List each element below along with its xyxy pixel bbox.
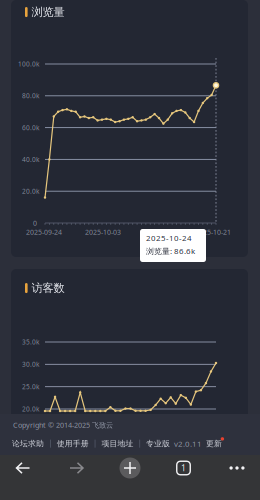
staticText: 60.0k [22,123,39,132]
staticText: 2025-10-24 [146,233,192,243]
staticText: 2025-10-03 [85,227,121,237]
staticText: 30.0k [22,360,39,369]
staticText: 使用手册 [57,439,89,449]
staticText: 论坛求助 [12,439,44,449]
button[interactable]: More [224,455,250,481]
staticText: 0 [33,218,37,228]
staticText: 40.0k [22,155,39,164]
staticText: 100.0k [18,60,39,68]
staticText: 1 [181,462,186,474]
staticText: 20.0k [22,405,39,413]
staticText: 访客数 [32,281,65,295]
staticText: 80.0k [22,91,39,100]
staticText: 2025-09-24 [26,227,62,237]
staticText: v2.0.11 [174,438,202,449]
staticText: 2025-10-21 [195,227,231,237]
staticText: Copyright © 2014-2025 飞致云 [13,420,113,430]
staticText: 35.0k [22,338,39,346]
button[interactable]: Back [10,455,36,481]
button[interactable]: 论坛求助 [12,439,44,449]
button[interactable]: New Tab [117,455,143,481]
button[interactable]: Forward [63,455,89,481]
staticText: 浏览量: 86.6k [146,246,195,256]
button[interactable]: 使用手册 [57,439,89,449]
staticText: 浏览量 [32,5,65,19]
button[interactable]: 更新 [206,439,222,449]
staticText: 25.0k [22,382,39,391]
button[interactable]: 项目地址 [101,439,133,449]
staticText: 专业版 [146,439,170,449]
button[interactable]: 专业版 [146,439,170,449]
staticText: 更新 [206,439,222,449]
staticText: 项目地址 [101,439,133,449]
staticText: 20.0k [22,187,39,196]
button[interactable]: Tabs [170,455,196,481]
